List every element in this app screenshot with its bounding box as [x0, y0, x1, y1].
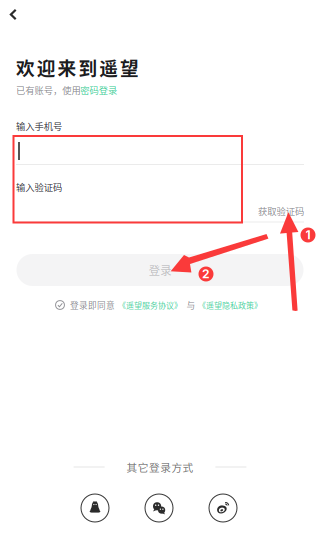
staticText: 密码登录	[80, 83, 117, 97]
staticText: 《遥望服务协议》	[118, 299, 182, 311]
staticText: 1	[305, 228, 310, 242]
button[interactable]: 获取验证码	[248, 203, 304, 219]
button[interactable]: 登录	[16, 254, 303, 286]
button[interactable]: QQ 登录	[80, 493, 109, 522]
staticText: 与	[186, 299, 195, 311]
button[interactable]: 密码登录	[80, 83, 117, 97]
button[interactable]: Back	[0, 0, 28, 29]
staticText: 登录	[149, 262, 171, 278]
staticText: 获取验证码	[258, 204, 304, 218]
staticText: 2	[202, 267, 210, 281]
button[interactable]: 微信登录	[144, 493, 173, 522]
staticText: 其它登录方式	[127, 459, 193, 475]
staticText: 《遥望隐私政策》	[198, 299, 262, 311]
staticText: 已有账号，使用	[16, 83, 80, 97]
staticText: 欢迎来到遥望	[16, 53, 139, 80]
button[interactable]: 《遥望隐私政策》	[198, 299, 264, 311]
staticText: 输入手机号	[16, 119, 62, 133]
staticText: 输入验证码	[16, 180, 62, 194]
button[interactable]: 《遥望服务协议》	[118, 299, 184, 311]
staticText: 登录即同意	[70, 299, 115, 311]
button[interactable]: 微博登录	[208, 493, 237, 522]
